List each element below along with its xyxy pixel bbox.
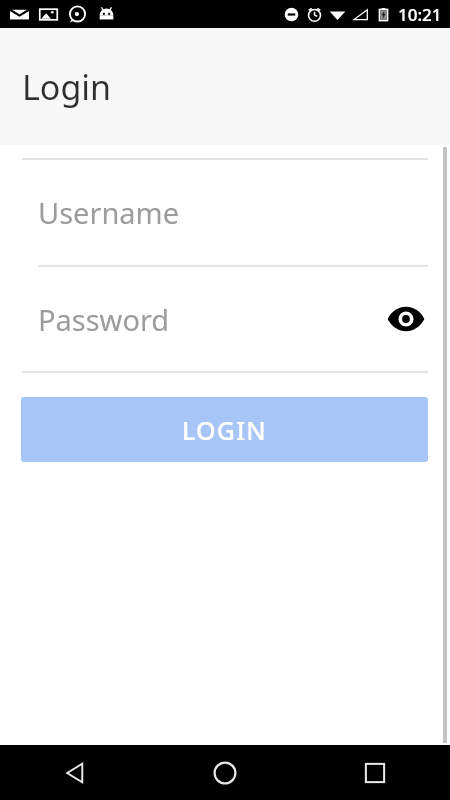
staticText: Username — [38, 193, 180, 232]
staticText: LOGIN — [182, 413, 267, 447]
button[interactable]: Back — [0, 745, 150, 800]
staticText: Password — [38, 300, 170, 339]
button[interactable]: Password — [0, 267, 450, 371]
staticText: 10:21 — [398, 3, 442, 26]
button[interactable]: Show password — [384, 297, 428, 341]
button[interactable]: LOGIN — [21, 397, 428, 462]
button[interactable]: Recents — [300, 745, 450, 800]
staticText: Login — [22, 64, 112, 110]
button[interactable]: Username — [0, 160, 450, 265]
button[interactable]: Home — [150, 745, 300, 800]
